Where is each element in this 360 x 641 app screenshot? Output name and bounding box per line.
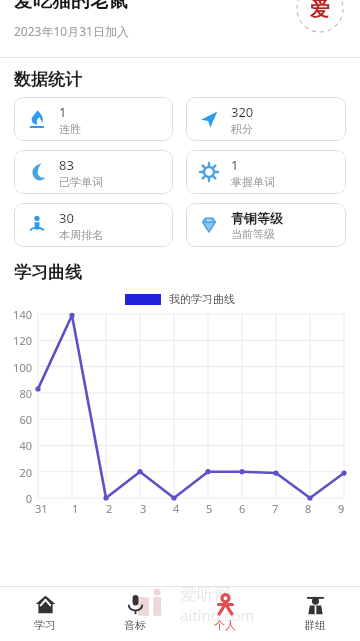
button[interactable]: 30: [14, 203, 173, 247]
staticText: 数据统计: [14, 69, 82, 90]
staticText: 80: [0, 386, 32, 401]
button[interactable]: 青铜等级: [186, 203, 346, 247]
button[interactable]: 83: [14, 150, 173, 194]
staticText: 已学单词: [59, 175, 103, 189]
staticText: 100: [0, 360, 32, 375]
staticText: 140: [0, 307, 32, 322]
staticText: aiting.com: [180, 605, 255, 625]
staticText: 我的学习曲线: [169, 292, 235, 306]
staticText: 4: [173, 501, 180, 516]
button[interactable]: 学习: [0, 587, 90, 641]
staticText: 群组: [304, 618, 326, 632]
staticText: 9: [338, 501, 345, 516]
staticText: 个人: [214, 618, 236, 632]
staticText: 7: [272, 501, 279, 516]
staticText: 爱: [310, 0, 330, 22]
button[interactable]: 1: [186, 150, 346, 194]
staticText: 120: [0, 333, 32, 348]
staticText: 爱吃猫的老鼠: [14, 0, 128, 13]
staticText: 6: [239, 501, 246, 516]
staticText: 30: [59, 209, 74, 227]
staticText: 8: [305, 501, 312, 516]
staticText: 1: [231, 156, 239, 174]
staticText: 2: [106, 501, 113, 516]
staticText: 积分: [231, 122, 253, 136]
staticText: 2023年10月31日加入: [14, 23, 129, 39]
staticText: 1: [59, 103, 67, 121]
staticText: 音标: [124, 618, 146, 632]
staticText: 连胜: [59, 122, 81, 136]
staticText: 20: [0, 465, 32, 480]
staticText: 320: [231, 103, 254, 121]
staticText: 3: [140, 501, 147, 516]
staticText: 掌握单词: [231, 175, 275, 189]
button[interactable]: 用户头像: [296, 0, 344, 33]
staticText: 40: [0, 438, 32, 453]
staticText: 爱听网: [180, 584, 231, 605]
staticText: 83: [59, 156, 74, 174]
button[interactable]: 320: [186, 97, 346, 141]
staticText: 青铜等级: [231, 210, 283, 226]
staticText: 当前等级: [231, 227, 275, 241]
staticText: 1: [72, 501, 79, 516]
staticText: 学习: [34, 618, 56, 632]
button[interactable]: 群组: [270, 587, 360, 641]
staticText: 学习曲线: [14, 262, 82, 283]
staticText: 0: [0, 491, 32, 506]
staticText: 60: [0, 412, 32, 427]
staticText: 31: [35, 501, 48, 516]
button[interactable]: 1: [14, 97, 173, 141]
staticText: 本周排名: [59, 228, 103, 242]
button[interactable]: 音标: [90, 587, 180, 641]
button[interactable]: 个人: [180, 587, 270, 641]
staticText: 5: [206, 501, 213, 516]
